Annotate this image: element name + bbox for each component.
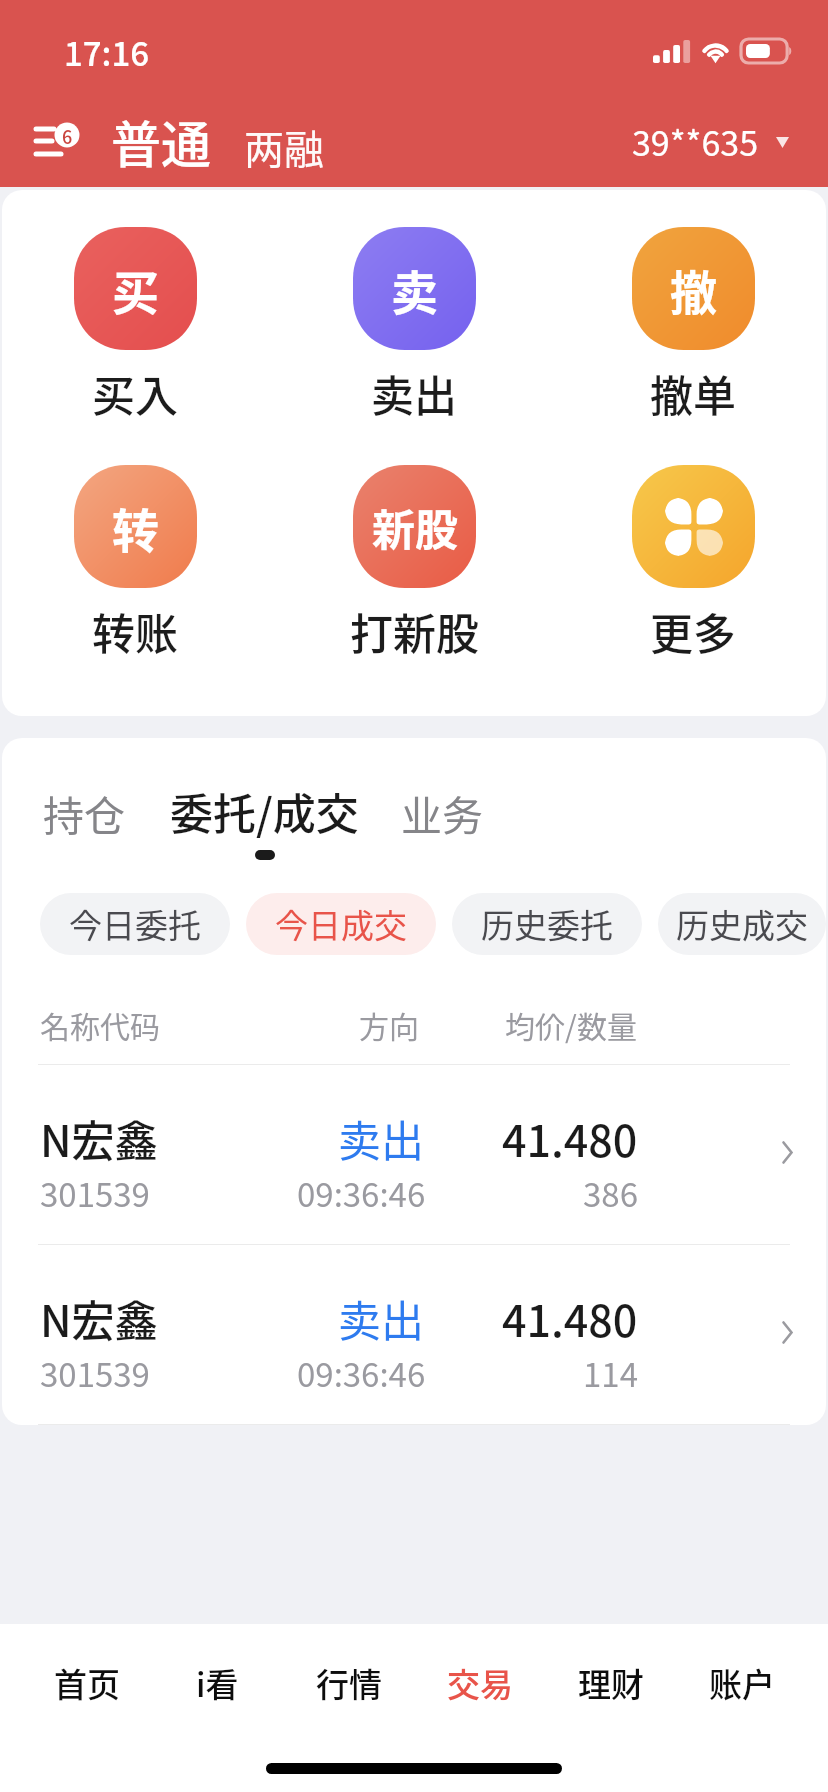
- staticText: 方向: [317, 1003, 461, 1046]
- button[interactable]: N宏鑫: [2, 1065, 826, 1244]
- staticText: 301539: [40, 1349, 150, 1397]
- staticText: 17:16: [64, 28, 150, 76]
- staticText: 行情: [316, 1659, 382, 1707]
- button[interactable]: 历史委托: [452, 893, 642, 955]
- staticText: 114: [583, 1349, 638, 1397]
- button[interactable]: 新股: [290, 465, 538, 662]
- staticText: 更多: [650, 600, 736, 662]
- button[interactable]: 买: [11, 227, 259, 424]
- staticText: 业务: [401, 783, 483, 842]
- button[interactable]: 委托/成交: [170, 780, 359, 860]
- staticText: 今日委托: [69, 900, 201, 948]
- staticText: 两融: [244, 118, 324, 176]
- staticText: 卖出: [338, 1107, 424, 1169]
- other: Open details: [748, 1321, 826, 1344]
- button[interactable]: 39**635: [632, 117, 789, 166]
- button[interactable]: 首页: [21, 1624, 152, 1741]
- staticText: N宏鑫: [40, 1287, 158, 1349]
- button[interactable]: i看: [152, 1624, 283, 1741]
- staticText: 09:36:46: [297, 1349, 426, 1397]
- button[interactable]: 行情: [283, 1624, 414, 1741]
- staticText: 39**635: [632, 117, 759, 166]
- staticText: 转账: [92, 600, 178, 662]
- button[interactable]: 账户: [676, 1624, 807, 1741]
- button[interactable]: 交易: [414, 1624, 545, 1741]
- button[interactable]: 业务: [401, 783, 483, 860]
- staticText: 名称代码: [40, 1003, 317, 1046]
- other: Open details: [748, 1141, 826, 1164]
- staticText: 41.480: [502, 1287, 638, 1349]
- staticText: 386: [583, 1169, 638, 1217]
- staticText: 委托/成交: [170, 780, 359, 842]
- staticText: 理财: [578, 1659, 644, 1707]
- staticText: 转: [112, 493, 159, 561]
- staticText: 6: [62, 123, 73, 147]
- staticText: 账户: [709, 1659, 775, 1707]
- staticText: 301539: [40, 1169, 150, 1217]
- button[interactable]: Menu: [24, 118, 80, 164]
- button[interactable]: 普通: [111, 105, 324, 177]
- staticText: 撤: [670, 255, 717, 323]
- staticText: 交易: [447, 1659, 513, 1707]
- staticText: 41.480: [502, 1107, 638, 1169]
- button[interactable]: 理财: [545, 1624, 676, 1741]
- staticText: 持仓: [43, 783, 125, 842]
- button[interactable]: 今日委托: [40, 893, 230, 955]
- staticText: 撤单: [650, 362, 736, 424]
- button[interactable]: 持仓: [43, 783, 125, 860]
- staticText: i看: [196, 1659, 239, 1707]
- button[interactable]: 更多: [569, 465, 817, 662]
- staticText: 历史委托: [481, 900, 613, 948]
- button[interactable]: 转: [11, 465, 259, 662]
- staticText: 均价/数量: [461, 1003, 681, 1046]
- button[interactable]: 撤: [569, 227, 817, 424]
- staticText: 今日成交: [275, 900, 407, 948]
- staticText: 首页: [54, 1659, 120, 1707]
- staticText: 买: [112, 255, 159, 323]
- staticText: 历史成交: [676, 900, 808, 948]
- staticText: N宏鑫: [40, 1107, 158, 1169]
- staticText: 打新股: [350, 600, 479, 662]
- button[interactable]: N宏鑫: [2, 1245, 826, 1424]
- staticText: 买入: [92, 362, 178, 424]
- staticText: 卖出: [371, 362, 457, 424]
- staticText: 卖: [391, 255, 438, 323]
- button[interactable]: 今日成交: [246, 893, 436, 955]
- button[interactable]: 卖: [290, 227, 538, 424]
- staticText: 普通: [111, 105, 211, 177]
- staticText: 卖出: [338, 1287, 424, 1349]
- button[interactable]: 历史成交: [658, 893, 826, 955]
- staticText: 新股: [372, 496, 458, 558]
- staticText: 09:36:46: [297, 1169, 426, 1217]
